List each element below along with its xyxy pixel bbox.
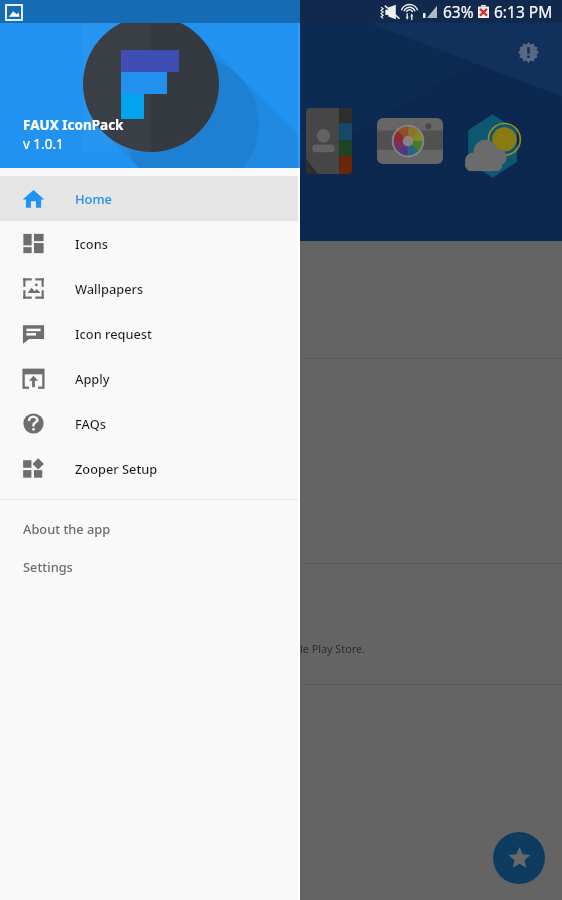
staticText: Icons [75, 235, 108, 252]
staticText: FAQs [75, 415, 106, 432]
staticText: Apply [75, 370, 110, 387]
button[interactable]: Icon request [0, 311, 300, 356]
staticText: Settings [23, 558, 73, 575]
button[interactable]: Apply [0, 356, 300, 401]
staticText: About the app [23, 520, 111, 537]
button[interactable]: Zooper Setup [0, 446, 300, 491]
staticText: le Play Store. [300, 641, 365, 656]
staticText: Wallpapers [75, 280, 144, 297]
staticText: FAUX IconPack [23, 116, 124, 134]
button[interactable]: Home [0, 176, 300, 221]
staticText: Zooper Setup [75, 460, 158, 477]
button[interactable]: Favorites [493, 832, 545, 884]
button[interactable]: Wallpapers [0, 266, 300, 311]
button[interactable]: Icons [0, 221, 300, 266]
staticText: Icon request [75, 325, 152, 342]
button[interactable]: About the app [0, 509, 300, 547]
staticText: 63% [443, 1, 474, 22]
staticText: 6:13 PM [494, 1, 553, 22]
button[interactable]: Settings [0, 547, 300, 585]
button[interactable]: FAQs [0, 401, 300, 446]
staticText: v 1.0.1 [23, 135, 64, 153]
staticText: Home [75, 190, 112, 207]
